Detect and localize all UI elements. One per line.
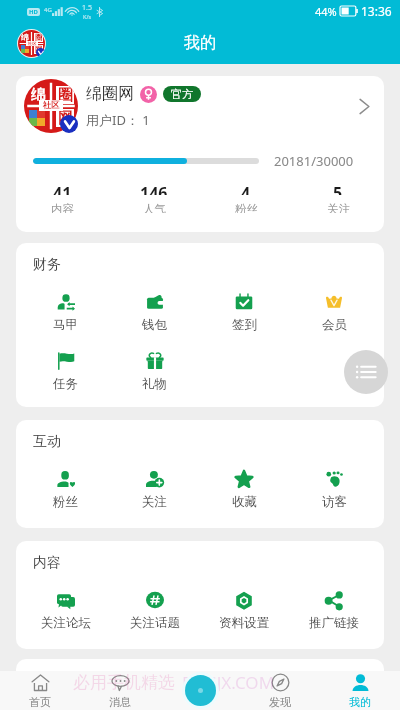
staticText: 社区 bbox=[43, 100, 60, 111]
button[interactable]: 我的 bbox=[320, 671, 400, 710]
button[interactable]: 访客 bbox=[289, 470, 379, 510]
staticText: 网 bbox=[58, 109, 73, 127]
staticText: 44% bbox=[315, 4, 337, 19]
button[interactable]: 会员 bbox=[289, 293, 379, 333]
staticText: 关注 bbox=[327, 202, 350, 213]
button[interactable]: Menu bbox=[344, 350, 388, 394]
button[interactable]: 推广链接 bbox=[289, 591, 379, 631]
staticText: 我的 bbox=[349, 695, 371, 709]
staticText: 圈 bbox=[58, 86, 73, 104]
button[interactable]: 绵 bbox=[24, 76, 370, 136]
staticText: 会员 bbox=[322, 317, 347, 333]
staticText: 消息 bbox=[109, 695, 131, 709]
staticText: 圈 bbox=[35, 33, 43, 42]
staticText: 绵 bbox=[21, 33, 29, 42]
staticText: 马甲 bbox=[53, 317, 78, 333]
staticText: 任务 bbox=[53, 376, 78, 392]
button[interactable]: 资料设置 bbox=[199, 591, 289, 631]
button[interactable]: Profile bbox=[17, 29, 46, 58]
button[interactable]: 签到 bbox=[199, 293, 289, 333]
button[interactable]: 钱包 bbox=[110, 293, 199, 333]
staticText: 绵 bbox=[31, 86, 46, 104]
button[interactable]: 发现 bbox=[240, 671, 320, 710]
staticText: 4G bbox=[44, 6, 52, 14]
staticText: 4 bbox=[241, 182, 251, 195]
button[interactable]: 收藏 bbox=[199, 470, 289, 510]
staticText: HD bbox=[29, 8, 38, 16]
staticText: 关注话题 bbox=[130, 615, 180, 631]
staticText: 互动 bbox=[33, 433, 61, 451]
button[interactable]: 关注论坛 bbox=[21, 591, 110, 631]
button[interactable]: 马甲 bbox=[21, 293, 110, 333]
staticText: 粉丝 bbox=[53, 494, 78, 510]
staticText: 146 bbox=[140, 182, 168, 195]
staticText: 访客 bbox=[322, 494, 347, 510]
staticText: 用户ID： 1 bbox=[86, 111, 150, 129]
staticText: 20181/30000 bbox=[274, 152, 354, 170]
staticText: 粉丝 bbox=[235, 202, 258, 213]
staticText: 我的 bbox=[184, 33, 216, 53]
staticText: 发现 bbox=[269, 695, 291, 709]
staticText: 内容 bbox=[33, 554, 61, 572]
staticText: 财务 bbox=[33, 256, 61, 274]
button[interactable]: 41 bbox=[16, 182, 108, 213]
staticText: 推广链接 bbox=[309, 615, 359, 631]
staticText: 关注 bbox=[142, 494, 167, 510]
button[interactable]: 消息 bbox=[80, 671, 160, 710]
button[interactable]: Post bbox=[185, 675, 216, 706]
staticText: 签到 bbox=[232, 317, 257, 333]
button[interactable]: 首页 bbox=[0, 671, 80, 710]
staticText: 钱包 bbox=[142, 317, 167, 333]
staticText: 网 bbox=[35, 45, 43, 54]
button[interactable]: 关注话题 bbox=[110, 591, 199, 631]
staticText: 41 bbox=[53, 182, 72, 195]
button[interactable]: 任务 bbox=[21, 352, 110, 392]
staticText: 资料设置 bbox=[219, 615, 269, 631]
staticText: 礼物 bbox=[142, 376, 167, 392]
staticText: 5 bbox=[333, 182, 343, 195]
staticText: 收藏 bbox=[232, 494, 257, 510]
staticText: 必用手机精选 bbox=[73, 672, 175, 693]
button[interactable]: 礼物 bbox=[110, 352, 199, 392]
button[interactable]: 146 bbox=[108, 182, 200, 213]
staticText: 首页 bbox=[29, 695, 51, 709]
staticText: 绵圈网 bbox=[86, 84, 134, 104]
staticText: 人气 bbox=[143, 202, 166, 213]
staticText: K/s bbox=[83, 13, 92, 20]
button[interactable]: 关注 bbox=[110, 470, 199, 510]
button[interactable]: 5 bbox=[292, 182, 384, 213]
button[interactable]: 4 bbox=[200, 182, 292, 213]
staticText: BYJSJX.COM bbox=[182, 671, 275, 694]
staticText: 关注论坛 bbox=[41, 615, 91, 631]
staticText: 内容 bbox=[51, 202, 74, 213]
staticText: 13:36 bbox=[361, 3, 392, 19]
staticText: 1.5 bbox=[82, 3, 92, 13]
staticText: 官方 bbox=[171, 87, 193, 101]
button[interactable]: 粉丝 bbox=[21, 470, 110, 510]
staticText: 社区 bbox=[28, 41, 37, 46]
